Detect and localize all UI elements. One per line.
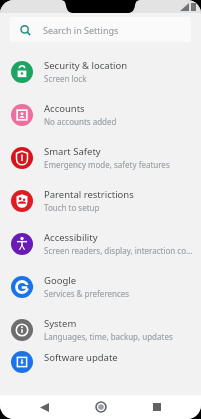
button[interactable]: Accessibility — [0, 222, 201, 265]
staticText: Smart Safety — [44, 145, 101, 158]
staticText: Emergency mode, safety features — [44, 159, 170, 170]
staticText: Parental restrictions — [44, 188, 134, 201]
staticText: Software update — [44, 351, 118, 364]
button[interactable]: Google — [0, 265, 201, 308]
button[interactable]: Software update — [0, 351, 201, 377]
staticText: Security & location — [44, 59, 128, 72]
button[interactable]: Parental restrictions — [0, 179, 201, 222]
staticText: Languages, time, backup, updates — [44, 331, 173, 342]
staticText: No accounts added — [44, 116, 117, 127]
staticText: System — [44, 317, 77, 330]
button[interactable]: Accounts — [0, 93, 201, 136]
staticText: Google — [44, 274, 77, 287]
staticText: Accounts — [44, 102, 85, 115]
button[interactable]: Back — [31, 395, 57, 419]
button[interactable]: Search in Settings — [10, 17, 191, 42]
button[interactable]: Home — [88, 395, 114, 419]
button[interactable]: Recents — [144, 395, 170, 419]
staticText: Screen readers, display, interaction co… — [44, 245, 193, 256]
button[interactable]: Security & location — [0, 50, 201, 93]
button[interactable]: Smart Safety — [0, 136, 201, 179]
staticText: Accessibility — [44, 231, 98, 244]
staticText: Search in Settings — [43, 24, 119, 36]
staticText: Screen lock — [44, 73, 87, 84]
staticText: Touch to setup — [44, 202, 100, 213]
staticText: Services & preferences — [44, 288, 130, 299]
button[interactable]: System — [0, 308, 201, 351]
